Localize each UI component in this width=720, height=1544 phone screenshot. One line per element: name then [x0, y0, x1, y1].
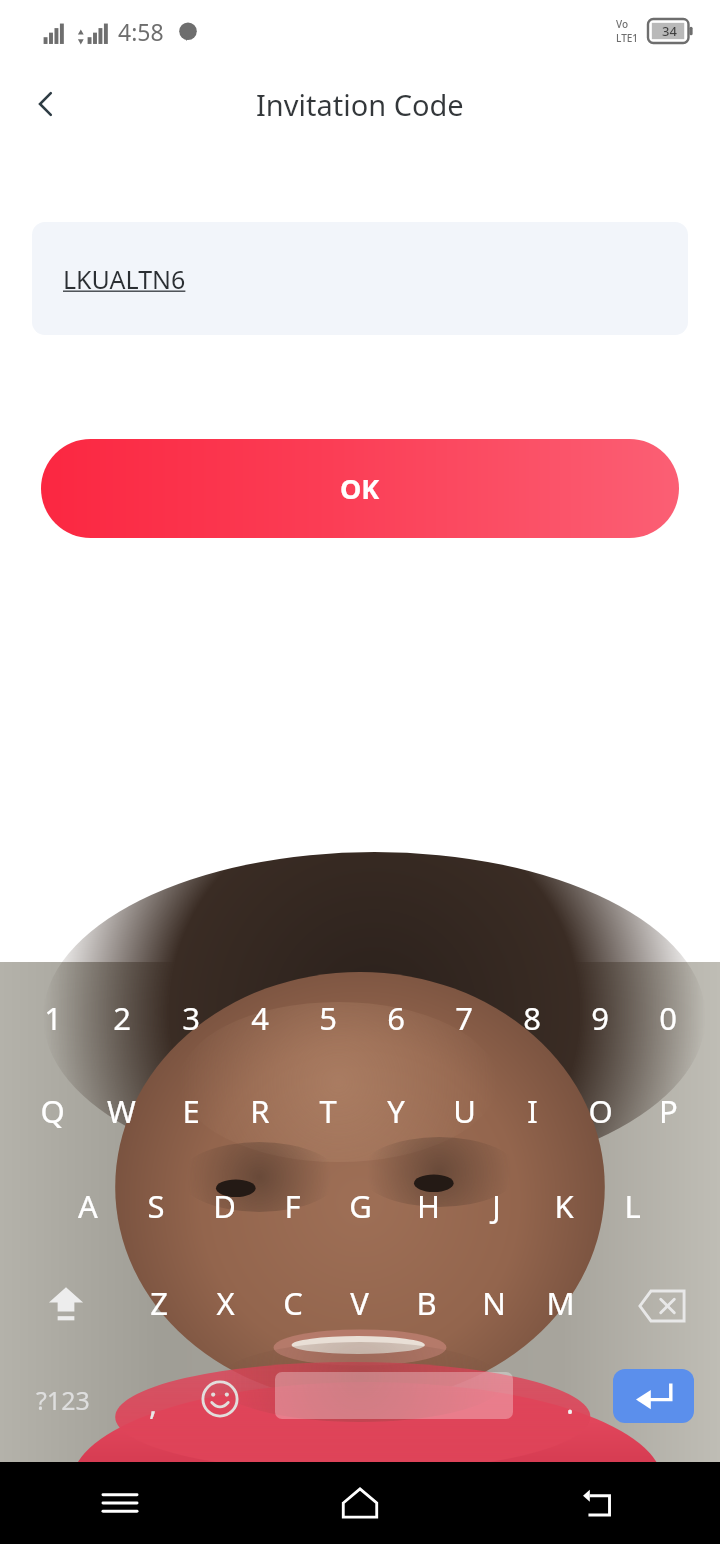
button[interactable]: W [87, 1083, 156, 1139]
staticText: J [492, 1185, 501, 1227]
button[interactable]: 0 [634, 990, 702, 1046]
button[interactable]: Home [240, 1462, 480, 1544]
staticText: G [349, 1185, 372, 1227]
staticText: V [350, 1282, 369, 1324]
staticText: K [554, 1185, 574, 1227]
staticText: Z [150, 1282, 168, 1324]
button[interactable]: A [54, 1178, 122, 1234]
staticText: 1 [44, 997, 62, 1039]
button[interactable]: L [598, 1178, 666, 1234]
staticText: A [78, 1185, 98, 1227]
button[interactable]: OK [41, 439, 679, 538]
button[interactable]: X [192, 1275, 259, 1331]
staticText: I [527, 1090, 538, 1132]
button[interactable]: U [430, 1083, 498, 1139]
staticText: ?123 [36, 1383, 90, 1417]
staticText: 5 [319, 997, 337, 1039]
staticText: 6 [387, 997, 405, 1039]
button[interactable]: 4 [225, 990, 294, 1046]
staticText: 4 [251, 997, 269, 1039]
button[interactable]: M [527, 1275, 594, 1331]
staticText: B [416, 1282, 437, 1324]
staticText: Y [387, 1090, 405, 1132]
staticText: . [566, 1382, 575, 1423]
button[interactable]: 2 [87, 990, 156, 1046]
staticText: U [453, 1090, 476, 1132]
staticText: Q [40, 1090, 65, 1132]
button[interactable]: S [122, 1178, 190, 1234]
button[interactable]: H [394, 1178, 462, 1234]
button[interactable]: 9 [566, 990, 634, 1046]
staticText: 34 [662, 22, 677, 40]
button[interactable]: O [566, 1083, 634, 1139]
button[interactable]: F [258, 1178, 326, 1234]
button[interactable]: 8 [498, 990, 566, 1046]
staticText: T [319, 1090, 337, 1132]
button[interactable]: 3 [156, 990, 225, 1046]
button[interactable]: V [326, 1275, 393, 1331]
staticText: 0 [659, 997, 677, 1039]
button[interactable]: Space [275, 1372, 513, 1419]
button[interactable]: Shift [36, 1274, 96, 1334]
staticText: LTE1 [616, 31, 639, 45]
button[interactable]: Back [14, 72, 78, 136]
button[interactable]: Z [126, 1275, 192, 1331]
button[interactable]: Q [18, 1083, 87, 1139]
button[interactable]: LKUALTN6 [32, 222, 688, 335]
button[interactable]: Period [548, 1380, 592, 1424]
button[interactable]: C [259, 1275, 326, 1331]
staticText: 8 [523, 997, 541, 1039]
button[interactable]: 7 [430, 990, 498, 1046]
staticText: H [417, 1185, 440, 1227]
button[interactable]: N [460, 1275, 527, 1331]
button[interactable]: 6 [362, 990, 430, 1046]
button[interactable]: P [634, 1083, 702, 1139]
staticText: D [213, 1185, 236, 1227]
staticText: O [588, 1090, 613, 1132]
staticText: , [149, 1383, 158, 1424]
staticText: F [284, 1185, 301, 1227]
button[interactable]: Emoji [192, 1371, 248, 1427]
staticText: OK [340, 470, 380, 507]
staticText: P [659, 1090, 678, 1132]
staticText: C [283, 1282, 303, 1324]
staticText: 3 [182, 997, 200, 1039]
staticText: M [546, 1282, 575, 1324]
button[interactable]: G [326, 1178, 394, 1234]
button[interactable]: ?123 [20, 1372, 106, 1428]
staticText: 7 [455, 997, 473, 1039]
staticText: LKUALTN6 [63, 262, 186, 296]
staticText: S [147, 1185, 165, 1227]
button[interactable]: K [530, 1178, 598, 1234]
button[interactable]: J [462, 1178, 530, 1234]
staticText: Invitation Code [256, 85, 464, 124]
staticText: R [250, 1090, 270, 1132]
staticText: X [216, 1282, 235, 1324]
button[interactable]: Backspace [630, 1274, 694, 1338]
button[interactable]: D [190, 1178, 258, 1234]
button[interactable]: Comma [130, 1380, 176, 1426]
button[interactable]: Recent apps [0, 1462, 240, 1544]
button[interactable]: 1 [18, 990, 87, 1046]
staticText: W [107, 1090, 136, 1132]
button[interactable]: B [393, 1275, 460, 1331]
button[interactable]: Y [362, 1083, 430, 1139]
staticText: Vo [616, 17, 629, 31]
staticText: 2 [113, 997, 131, 1039]
button[interactable]: T [294, 1083, 362, 1139]
staticText: L [624, 1185, 641, 1227]
button[interactable]: 5 [294, 990, 362, 1046]
staticText: N [482, 1282, 506, 1324]
staticText: 4:58 [118, 16, 164, 47]
button[interactable]: Enter [613, 1369, 694, 1423]
button[interactable]: Back [480, 1462, 720, 1544]
button[interactable]: R [225, 1083, 294, 1139]
button[interactable]: I [498, 1083, 566, 1139]
button[interactable]: E [156, 1083, 225, 1139]
staticText: 9 [591, 997, 609, 1039]
staticText: E [182, 1090, 200, 1132]
